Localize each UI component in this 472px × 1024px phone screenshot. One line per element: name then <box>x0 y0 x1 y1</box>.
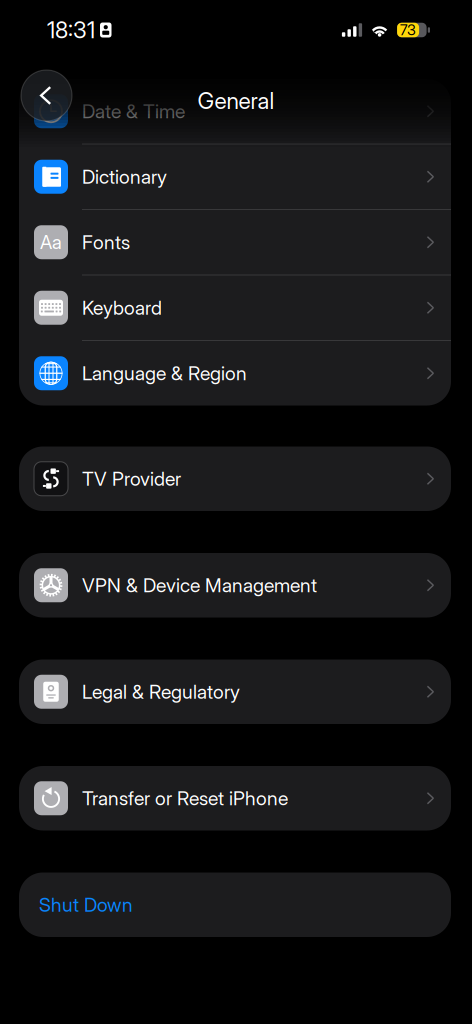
button[interactable]: Shut Down <box>19 872 451 937</box>
button[interactable]: Date & Time <box>19 79 451 143</box>
staticText: Date & Time <box>82 100 185 123</box>
button[interactable]: Back <box>21 70 72 121</box>
button[interactable]: Dictionary <box>19 144 451 209</box>
button[interactable]: Legal & Regulatory <box>19 659 451 724</box>
staticText: Keyboard <box>82 296 162 319</box>
staticText: Legal & Regulatory <box>82 680 240 703</box>
staticText: Shut Down <box>39 893 133 916</box>
button[interactable]: Language & Region <box>19 341 451 405</box>
staticText: General <box>197 87 274 114</box>
staticText: Background App Refresh <box>81 20 292 43</box>
staticText: Dictionary <box>82 165 167 188</box>
staticText: Aa <box>40 231 62 254</box>
staticText: Fonts <box>82 231 130 254</box>
button[interactable]: Aa <box>19 210 451 274</box>
button[interactable]: Keyboard <box>19 275 451 340</box>
button[interactable]: Transfer or Reset iPhone <box>19 766 451 830</box>
staticText: 73 <box>400 21 416 39</box>
staticText: 18:31 <box>47 16 95 44</box>
button[interactable]: VPN & Device Management <box>19 553 451 617</box>
staticText: VPN & Device Management <box>82 574 317 597</box>
staticText: Language & Region <box>82 362 247 385</box>
button[interactable]: TV Provider <box>19 446 451 511</box>
staticText: Transfer or Reset iPhone <box>82 787 288 810</box>
staticText: TV Provider <box>82 467 181 490</box>
